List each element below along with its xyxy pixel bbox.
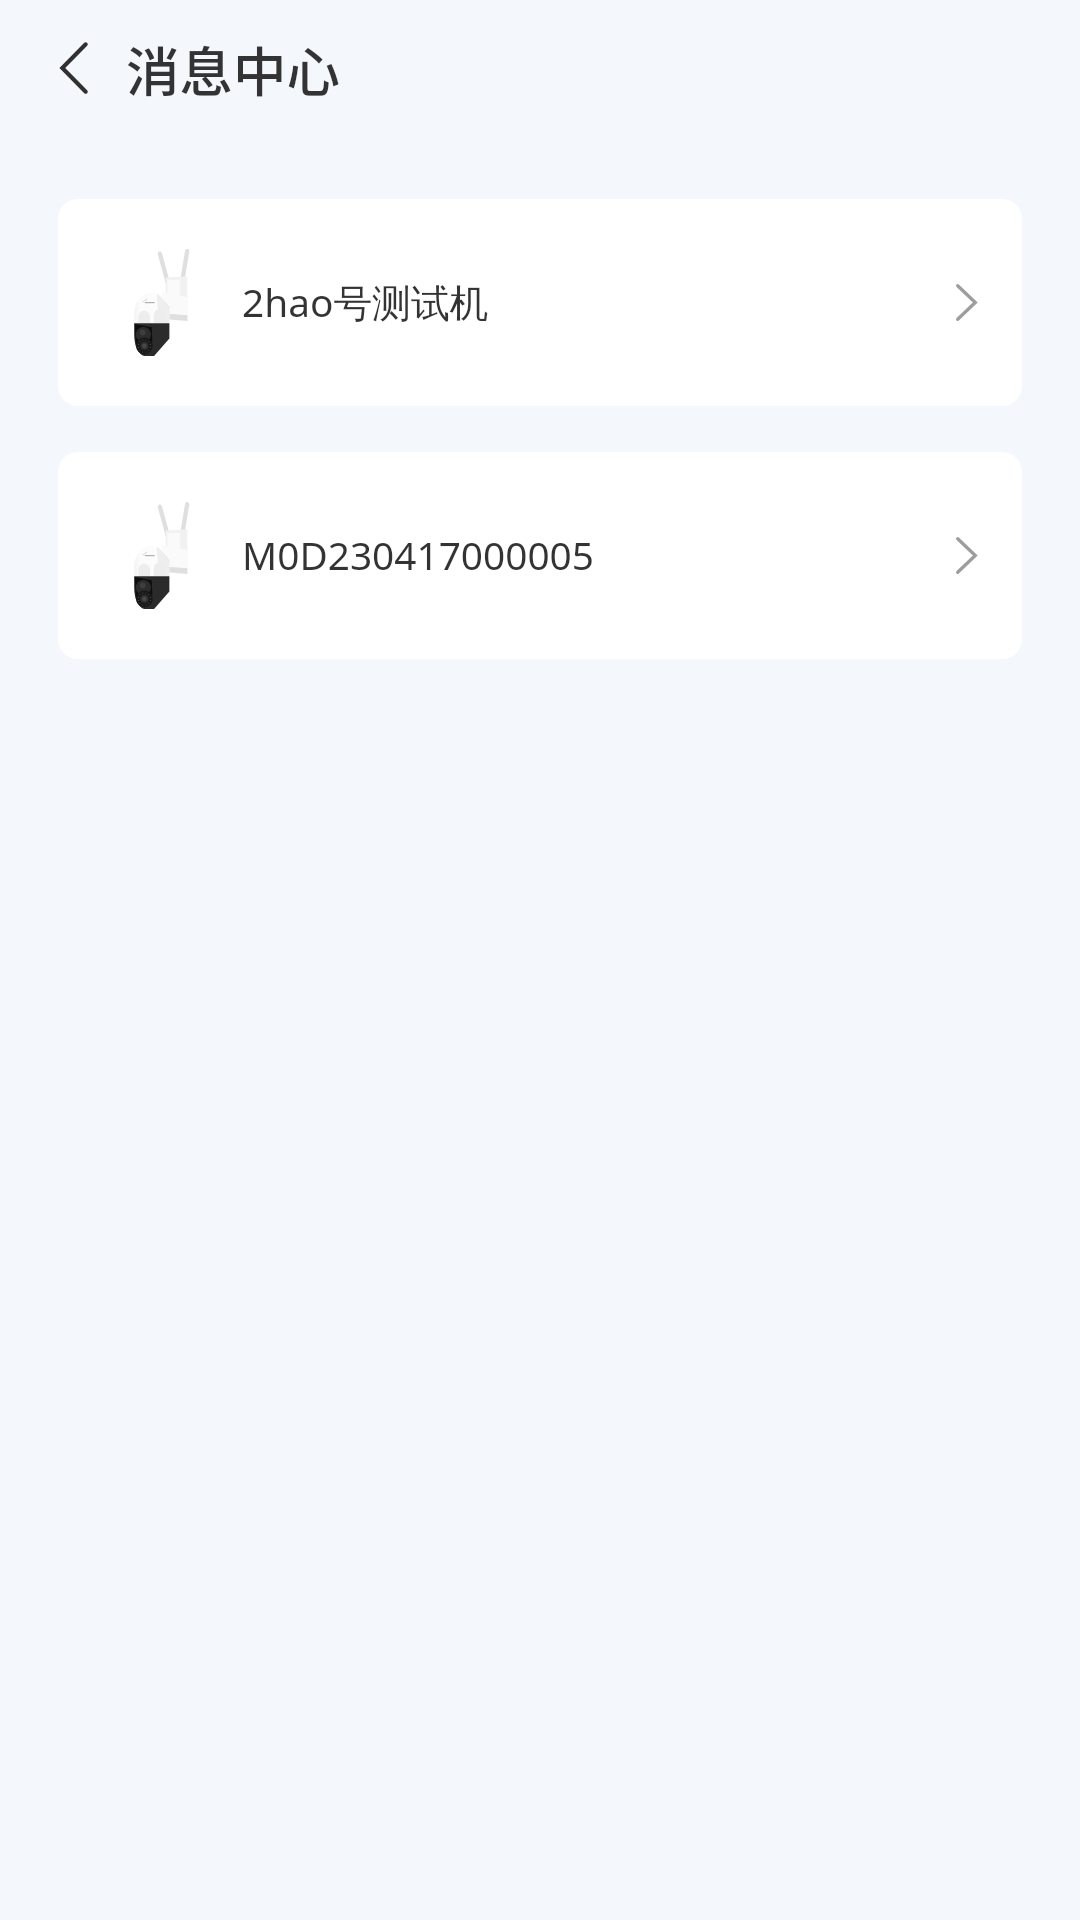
staticText: 消息中心 bbox=[126, 30, 340, 107]
button[interactable]: M0D230417000005 bbox=[58, 452, 1022, 659]
button[interactable]: Back bbox=[36, 15, 116, 115]
staticText: 2hao号测试机 bbox=[242, 276, 489, 329]
staticText: M0D230417000005 bbox=[242, 529, 595, 582]
button[interactable]: 2hao号测试机 bbox=[58, 199, 1022, 406]
